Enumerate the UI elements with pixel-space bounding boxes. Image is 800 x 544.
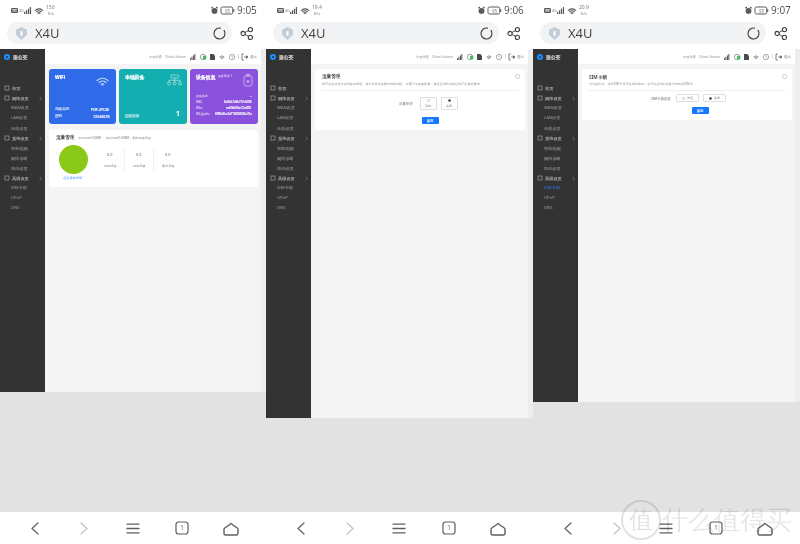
- button[interactable]: 开启: [676, 94, 699, 102]
- button[interactable]: SIM卡锁: [533, 183, 578, 193]
- staticText: 12345678: [93, 114, 110, 119]
- staticText: 网络诊断: [277, 156, 294, 161]
- button[interactable]: Forward: [601, 512, 633, 544]
- staticText: 无线名称: [55, 107, 70, 112]
- staticText: 首页: [12, 86, 21, 91]
- button[interactable]: 系统设置: [0, 133, 45, 143]
- button[interactable]: 系统设置: [533, 133, 578, 143]
- button[interactable]: LAN设置: [533, 113, 578, 123]
- button[interactable]: Menu: [383, 512, 415, 544]
- staticText: China Unicom: [699, 55, 720, 59]
- button[interactable]: DNS: [533, 203, 578, 213]
- staticText: WAN设置: [11, 105, 29, 111]
- button[interactable]: 网络诊断: [533, 153, 578, 163]
- button[interactable]: 关闭: [703, 94, 726, 102]
- staticText: 您可以在这里管理流量的阈值，超出后将自动断开网络连接，开通了不限量套餐，建议关闭…: [322, 82, 480, 86]
- button[interactable]: DNS: [0, 203, 45, 213]
- staticText: SIM卡锁: [277, 185, 293, 191]
- button[interactable]: 智能组网: [266, 143, 311, 153]
- button[interactable]: Menu: [650, 512, 682, 544]
- button[interactable]: Tabs: [166, 512, 198, 544]
- button[interactable]: 保存: [422, 117, 439, 124]
- button[interactable]: Back: [285, 512, 317, 544]
- button[interactable]: 网络设置: [533, 93, 578, 103]
- button[interactable]: 关闭: [441, 97, 458, 110]
- button[interactable]: 系统设置: [266, 133, 311, 143]
- button[interactable]: X4U: [273, 22, 499, 44]
- button[interactable]: WiFi: [49, 69, 116, 124]
- button[interactable]: 无线设置: [533, 123, 578, 133]
- button[interactable]: 路由设置: [0, 163, 45, 173]
- button[interactable]: Share: [503, 23, 523, 43]
- button[interactable]: UPnP: [0, 193, 45, 203]
- button[interactable]: LAN设置: [266, 113, 311, 123]
- staticText: 网络诊断: [544, 156, 561, 161]
- button[interactable]: 本地设备: [119, 69, 187, 124]
- button[interactable]: Reload: [478, 25, 494, 41]
- button[interactable]: LAN设置: [0, 113, 45, 123]
- button[interactable]: Home: [482, 512, 514, 544]
- button[interactable]: Home: [215, 512, 247, 544]
- button[interactable]: WAN设置: [266, 103, 311, 113]
- staticText: 4G: [285, 8, 290, 13]
- staticText: --: [250, 94, 252, 98]
- staticText: 智能组网: [277, 146, 294, 151]
- button[interactable]: 启用: [420, 97, 437, 110]
- button[interactable]: 设备信息: [190, 69, 258, 124]
- button[interactable]: Share: [770, 23, 790, 43]
- staticText: DNS: [544, 205, 553, 211]
- button[interactable]: Reload: [211, 25, 227, 41]
- staticText: LAN设置: [277, 115, 294, 121]
- staticText: 蒲公英: [279, 54, 294, 60]
- button[interactable]: Share: [236, 23, 256, 43]
- staticText: 已用流量: [104, 164, 117, 168]
- button[interactable]: Tabs: [700, 512, 732, 544]
- button[interactable]: 网络诊断: [0, 153, 45, 163]
- button[interactable]: Home: [749, 512, 781, 544]
- button[interactable]: 路由设置: [266, 163, 311, 173]
- button[interactable]: 网络设置: [0, 93, 45, 103]
- button[interactable]: UPnP: [266, 193, 311, 203]
- button[interactable]: 网络诊断: [266, 153, 311, 163]
- button[interactable]: SIM卡锁: [0, 183, 45, 193]
- staticText: 系统设置: [278, 136, 295, 141]
- button[interactable]: Reload: [745, 25, 761, 41]
- button[interactable]: X4U: [540, 22, 766, 44]
- button[interactable]: Back: [552, 512, 584, 544]
- button[interactable]: 网络设置: [266, 93, 311, 103]
- button[interactable]: 智能组网: [0, 143, 45, 153]
- staticText: SIM卡锁: [11, 185, 27, 191]
- button[interactable]: 高级设置: [533, 173, 578, 183]
- button[interactable]: 首页: [266, 83, 311, 93]
- button[interactable]: 高级设置: [0, 173, 45, 183]
- staticText: 8c8b27d3b757c6f08: [224, 100, 252, 104]
- button[interactable]: Tabs: [433, 512, 465, 544]
- button[interactable]: DNS: [266, 203, 311, 213]
- button[interactable]: WAN设置: [533, 103, 578, 113]
- button[interactable]: 首页: [0, 83, 45, 93]
- button[interactable]: 智能组网: [533, 143, 578, 153]
- staticText: PGY-2FC4E: [91, 107, 110, 112]
- button[interactable]: X4U: [7, 22, 232, 44]
- button[interactable]: Forward: [334, 512, 366, 544]
- staticText: 保存: [427, 119, 434, 123]
- button[interactable]: 首页: [533, 83, 578, 93]
- button[interactable]: WAN设置: [0, 103, 45, 113]
- button[interactable]: Back: [19, 512, 51, 544]
- button[interactable]: Forward: [68, 512, 100, 544]
- staticText: SIM卡锁: [589, 74, 607, 80]
- button[interactable]: 无线设置: [0, 123, 45, 133]
- staticText: 9:05: [237, 3, 257, 17]
- button[interactable]: 无线设置: [266, 123, 311, 133]
- button[interactable]: SIM卡锁: [266, 183, 311, 193]
- button[interactable]: 保存: [692, 107, 709, 114]
- button[interactable]: 高级设置: [266, 173, 311, 183]
- staticText: DNS: [11, 205, 20, 211]
- staticText: 本地设备: [125, 74, 145, 80]
- staticText: SN-注册码: [196, 112, 210, 116]
- button[interactable]: Menu: [117, 512, 149, 544]
- button[interactable]: 路由设置: [533, 163, 578, 173]
- button[interactable]: UPnP: [533, 193, 578, 203]
- staticText: MAC: [196, 100, 203, 104]
- staticText: 网络设置: [278, 96, 295, 101]
